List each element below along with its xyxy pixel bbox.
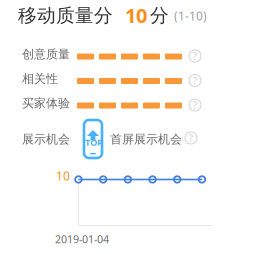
staticText: 买家体验 [22,96,70,111]
staticText: ? [192,98,197,112]
staticText: 首屏展示机会 [110,132,182,147]
staticText: 10 [125,2,147,29]
staticText: 创意质量 [22,47,70,62]
staticText: 10 [56,168,70,184]
button[interactable]: 说明 [188,49,202,63]
button[interactable]: 说明 [188,98,202,112]
staticText: 展示机会 [22,132,70,147]
staticText: 2019-01-04 [55,232,109,246]
staticText: TOP [85,136,103,148]
staticText: ? [188,131,193,145]
staticText: ? [192,49,197,63]
staticText: 移动质量分 [18,4,113,27]
staticText: 相关性 [22,71,58,86]
button[interactable]: 说明 [188,73,202,87]
staticText: ? [192,73,197,88]
staticText: 分 [150,4,169,27]
button[interactable]: 说明 [184,131,198,145]
staticText: (1-10) [174,8,207,24]
